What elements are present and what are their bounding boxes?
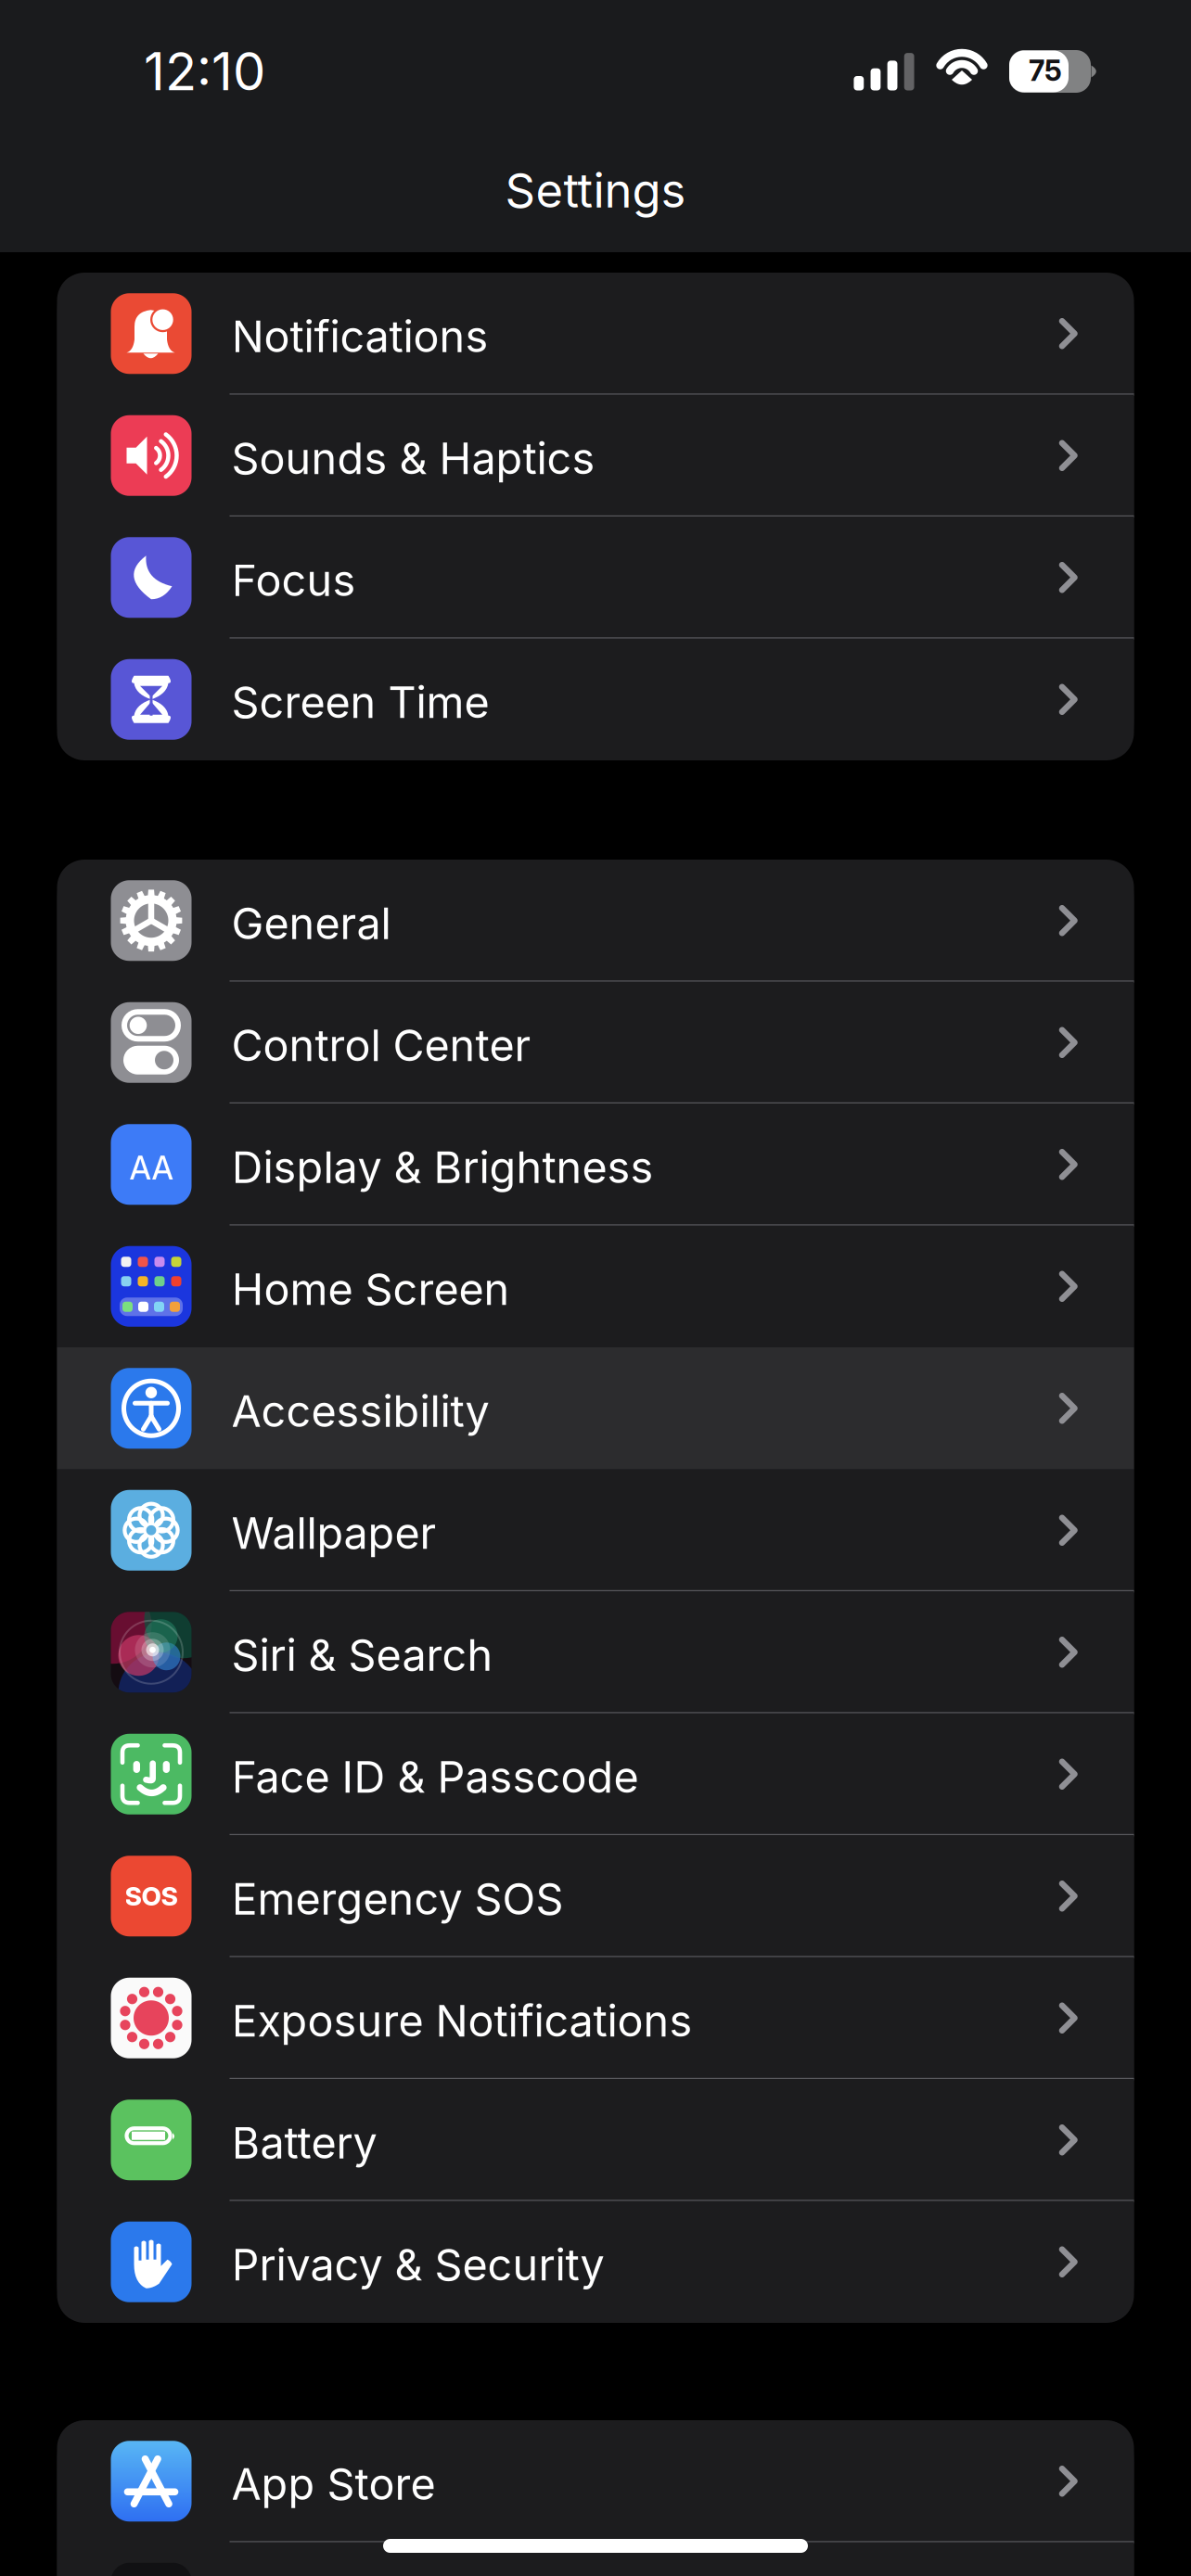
button[interactable]: Home Screen <box>57 1225 1134 1347</box>
staticText: Accessibility <box>231 1385 489 1437</box>
staticText: Face ID & Passcode <box>231 1751 639 1803</box>
button[interactable]: Privacy & Security <box>57 2201 1134 2323</box>
staticText: Wallpaper <box>231 1507 436 1559</box>
button[interactable]: Accessibility <box>57 1347 1134 1469</box>
staticText: 75 <box>1029 53 1062 88</box>
button[interactable]: Focus <box>57 516 1134 638</box>
staticText: Notifications <box>231 310 488 363</box>
staticText: Home Screen <box>231 1263 510 1315</box>
staticText: Focus <box>231 554 356 606</box>
staticText: Battery <box>231 2117 377 2169</box>
staticText: Sounds & Haptics <box>231 432 595 485</box>
staticText: Settings <box>505 162 686 219</box>
staticText: App Store <box>231 2458 435 2510</box>
staticText: 12:10 <box>144 40 265 103</box>
staticText: Privacy & Security <box>231 2238 604 2291</box>
staticText: Siri & Search <box>231 1629 493 1681</box>
button[interactable]: General <box>57 860 1134 982</box>
button[interactable]: Wallet <box>57 2542 1134 2576</box>
staticText: Control Center <box>231 1019 531 1071</box>
button[interactable]: App Store <box>57 2420 1134 2542</box>
button[interactable]: AA <box>57 1103 1134 1225</box>
staticText: General <box>231 897 391 950</box>
staticText: Exposure Notifications <box>231 1995 692 2047</box>
button[interactable]: Battery <box>57 2079 1134 2201</box>
button[interactable]: Siri & Search <box>57 1591 1134 1713</box>
button[interactable]: SOS <box>57 1835 1134 1957</box>
button[interactable]: Notifications <box>57 273 1134 395</box>
staticText: Display & Brightness <box>231 1141 653 1193</box>
button[interactable]: Screen Time <box>57 638 1134 760</box>
button[interactable]: Control Center <box>57 982 1134 1103</box>
staticText: Screen Time <box>231 676 489 728</box>
staticText: AA <box>129 1149 173 1188</box>
button[interactable]: Exposure Notifications <box>57 1957 1134 2079</box>
staticText: SOS <box>125 1880 178 1912</box>
button[interactable]: Wallpaper <box>57 1469 1134 1591</box>
button[interactable]: Face ID & Passcode <box>57 1713 1134 1835</box>
button[interactable]: Sounds & Haptics <box>57 395 1134 516</box>
staticText: Emergency SOS <box>231 1873 563 1925</box>
